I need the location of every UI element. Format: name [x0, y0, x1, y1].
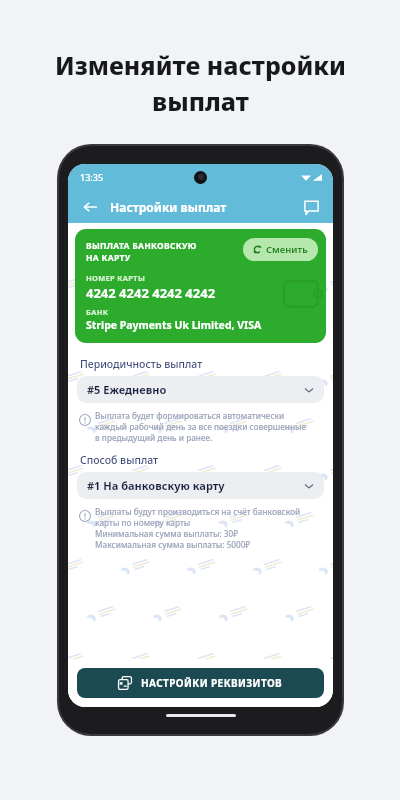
staticText: Периодичность выплат — [80, 357, 203, 371]
staticText: Настройки выплат — [110, 199, 227, 215]
staticText: Способ выплат — [80, 453, 159, 467]
staticText: БАНК — [86, 307, 109, 317]
staticText: #1 На банковскую карту — [87, 478, 225, 493]
staticText: НА КАРТУ — [86, 252, 131, 264]
staticText: ВЫПЛАТА БАНКОВСКУЮ — [86, 240, 197, 252]
staticText: Выплата будет формироваться автоматическ… — [95, 410, 285, 421]
staticText: Выплаты будут производиться на счёт банк… — [95, 506, 301, 517]
staticText: Сменить — [266, 243, 308, 256]
staticText: 4242 4242 4242 4242 — [86, 284, 216, 302]
staticText: Максимальная сумма выплаты: 5000₽ — [95, 539, 251, 550]
button[interactable]: #1 На банковскую карту — [77, 472, 324, 499]
button[interactable]: Сообщения — [300, 196, 322, 218]
button[interactable]: НАСТРОЙКИ РЕКВИЗИТОВ — [77, 668, 324, 698]
staticText: каждый рабочий день за все поездки совер… — [95, 421, 307, 432]
button[interactable]: ВЫПЛАТА БАНКОВСКУЮ — [75, 229, 326, 343]
staticText: Stripe Payments Uk Limited, VISA — [86, 318, 262, 332]
staticText: НОМЕР КАРТЫ — [86, 273, 146, 283]
staticText: НАСТРОЙКИ РЕКВИЗИТОВ — [141, 676, 283, 690]
button[interactable]: Назад — [79, 196, 101, 218]
button[interactable]: Сменить — [243, 238, 318, 261]
button[interactable]: #5 Ежедневно — [77, 376, 324, 403]
staticText: 13:35 — [80, 171, 104, 183]
staticText: Изменяйте настройки — [55, 48, 346, 82]
staticText: выплат — [152, 84, 249, 118]
staticText: карты по номеру карты — [95, 517, 191, 528]
staticText: Минимальная сумма выплаты: 30₽ — [95, 528, 238, 539]
staticText: #5 Ежедневно — [87, 382, 167, 397]
staticText: в предыдущий день и ранее. — [95, 432, 213, 443]
